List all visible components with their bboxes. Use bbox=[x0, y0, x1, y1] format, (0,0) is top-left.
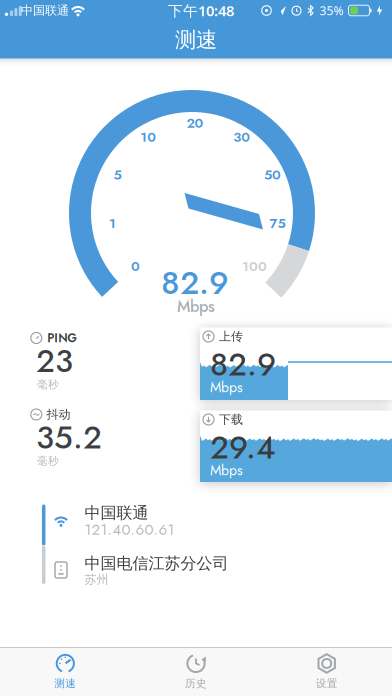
staticText: 35% bbox=[319, 2, 343, 18]
staticText: 0 bbox=[131, 257, 140, 276]
button[interactable]: 设置 bbox=[262, 648, 392, 694]
staticText: 中国联通 bbox=[21, 3, 69, 18]
staticText: 30 bbox=[233, 127, 250, 147]
staticText: 75 bbox=[269, 214, 285, 233]
button[interactable]: 历史 bbox=[131, 648, 261, 694]
button[interactable]: 测速 bbox=[0, 648, 130, 694]
staticText: 苏州 bbox=[84, 572, 108, 587]
staticText: 测速 bbox=[54, 677, 76, 690]
staticText: Mbps bbox=[210, 460, 243, 481]
staticText: 121.40.60.61 bbox=[84, 519, 174, 540]
staticText: Mbps bbox=[210, 377, 243, 398]
staticText: 下午10:48 bbox=[168, 1, 234, 20]
staticText: 100 bbox=[242, 257, 267, 276]
staticText: 上传 bbox=[219, 329, 243, 344]
staticText: 82.9 bbox=[210, 341, 276, 388]
staticText: 中国联通 bbox=[84, 503, 148, 523]
staticText: 下载 bbox=[219, 412, 243, 427]
staticText: 设置 bbox=[316, 677, 338, 690]
staticText: 中国电信江苏分公司 bbox=[84, 554, 228, 573]
staticText: 23 bbox=[36, 338, 73, 384]
staticText: 历史 bbox=[185, 677, 207, 690]
staticText: PING bbox=[47, 329, 77, 347]
staticText: 29.4 bbox=[210, 424, 276, 471]
staticText: 毫秒 bbox=[37, 378, 59, 391]
staticText: 50 bbox=[264, 165, 281, 185]
staticText: 10 bbox=[140, 127, 156, 147]
staticText: 20 bbox=[186, 113, 203, 133]
staticText: 测速 bbox=[175, 27, 217, 53]
staticText: 抖动 bbox=[46, 407, 70, 422]
staticText: 35.2 bbox=[36, 414, 102, 461]
staticText: 82.9 bbox=[161, 260, 229, 306]
staticText: 毫秒 bbox=[37, 454, 59, 467]
staticText: 1 bbox=[109, 214, 116, 233]
staticText: 5 bbox=[113, 165, 121, 185]
staticText: Mbps bbox=[177, 295, 215, 318]
